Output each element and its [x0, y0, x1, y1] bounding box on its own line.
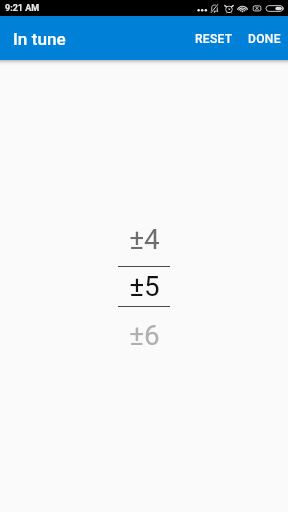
staticText: ±5: [129, 270, 160, 303]
staticText: 9:21 AM: [5, 3, 40, 14]
staticText: ±4: [129, 223, 160, 256]
button[interactable]: ±5: [118, 267, 170, 306]
button[interactable]: RESET: [187, 21, 240, 55]
staticText: In tune: [13, 29, 66, 49]
staticText: ±6: [129, 319, 160, 352]
button[interactable]: ±4: [118, 216, 170, 266]
button[interactable]: ±6: [118, 307, 170, 357]
staticText: DONE: [248, 32, 281, 46]
button[interactable]: DONE: [240, 21, 288, 55]
staticText: RESET: [195, 32, 233, 46]
